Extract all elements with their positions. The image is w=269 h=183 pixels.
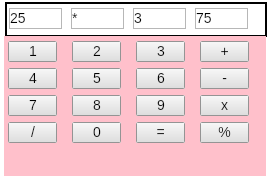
staticText: 9 bbox=[157, 97, 165, 113]
button[interactable]: Second operand bbox=[133, 8, 186, 29]
staticText: 3 bbox=[134, 10, 142, 26]
staticText: x bbox=[221, 97, 228, 113]
button[interactable]: = bbox=[136, 122, 185, 143]
button[interactable]: 2 bbox=[72, 41, 121, 62]
staticText: 4 bbox=[29, 70, 37, 86]
staticText: + bbox=[220, 43, 229, 59]
button[interactable]: Operator bbox=[71, 8, 124, 29]
staticText: 1 bbox=[29, 43, 37, 59]
staticText: = bbox=[156, 124, 165, 140]
button[interactable]: 5 bbox=[72, 68, 121, 89]
staticText: 8 bbox=[93, 97, 101, 113]
button[interactable]: 1 bbox=[8, 41, 57, 62]
button[interactable]: 0 bbox=[72, 122, 121, 143]
staticText: * bbox=[72, 10, 78, 26]
button[interactable]: - bbox=[200, 68, 249, 89]
staticText: - bbox=[222, 70, 227, 86]
button[interactable]: 3 bbox=[136, 41, 185, 62]
button[interactable]: / bbox=[8, 122, 57, 143]
staticText: 75 bbox=[196, 10, 212, 26]
button[interactable]: 6 bbox=[136, 68, 185, 89]
staticText: 2 bbox=[93, 43, 101, 59]
button[interactable]: 7 bbox=[8, 95, 57, 116]
staticText: 6 bbox=[157, 70, 165, 86]
staticText: 0 bbox=[93, 124, 101, 140]
staticText: 7 bbox=[29, 97, 37, 113]
button[interactable]: x bbox=[200, 95, 249, 116]
button[interactable]: First operand bbox=[9, 8, 62, 29]
staticText: 5 bbox=[93, 70, 101, 86]
button[interactable]: 4 bbox=[8, 68, 57, 89]
button[interactable]: + bbox=[200, 41, 249, 62]
staticText: 25 bbox=[10, 10, 26, 26]
button[interactable]: 9 bbox=[136, 95, 185, 116]
staticText: % bbox=[218, 124, 231, 140]
button[interactable]: % bbox=[200, 122, 249, 143]
button[interactable]: 8 bbox=[72, 95, 121, 116]
button[interactable]: Result bbox=[195, 8, 248, 29]
staticText: 3 bbox=[157, 43, 165, 59]
staticText: / bbox=[31, 124, 35, 140]
